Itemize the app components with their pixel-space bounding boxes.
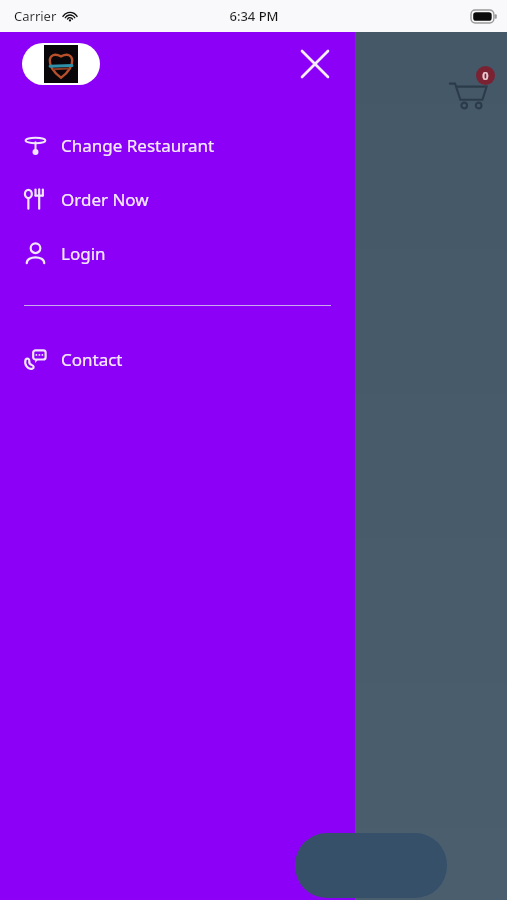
staticText: Change Restaurant bbox=[61, 134, 215, 157]
staticText: Order Now bbox=[61, 188, 149, 211]
button[interactable]: Contact bbox=[0, 332, 355, 386]
button[interactable]: Cart bbox=[449, 66, 495, 112]
button[interactable]: Change Restaurant bbox=[0, 118, 355, 172]
staticText: Contact bbox=[61, 348, 123, 371]
button[interactable]: Login bbox=[0, 226, 355, 280]
button[interactable]: Action button bbox=[295, 833, 447, 898]
staticText: 0 bbox=[482, 68, 489, 83]
staticText: Carrier bbox=[14, 7, 57, 25]
staticText: 6:34 PM bbox=[229, 7, 279, 25]
button[interactable]: Close menu bbox=[293, 42, 337, 86]
button[interactable]: Order Now bbox=[0, 172, 355, 226]
button[interactable]: Restaurant logo bbox=[22, 43, 100, 85]
staticText: Login bbox=[61, 242, 106, 265]
